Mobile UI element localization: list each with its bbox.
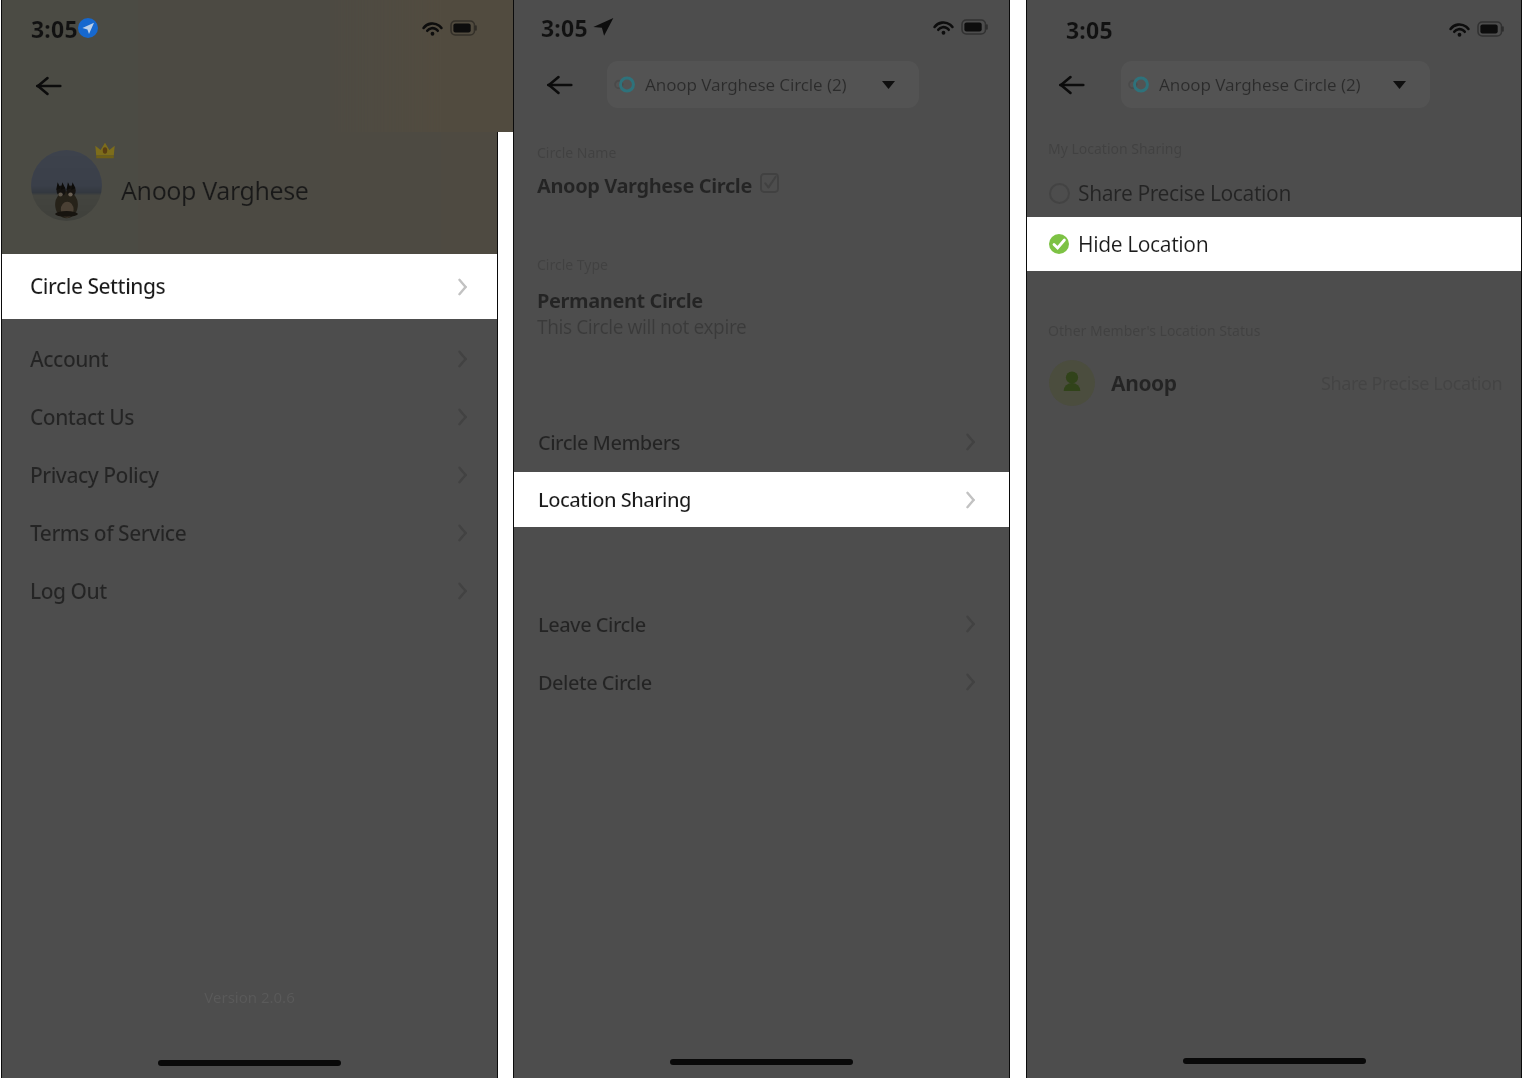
staticText: Circle Type — [537, 255, 608, 274]
staticText: Circle Members — [538, 429, 680, 456]
staticText: Anoop — [1111, 369, 1177, 398]
button[interactable]: Circle Members — [514, 414, 1009, 470]
staticText: Delete Circle — [538, 669, 652, 696]
button[interactable]: Hide Location — [1027, 217, 1521, 271]
staticText: Share Precise Location — [1078, 179, 1291, 208]
button[interactable]: Anoop Varghese Circle (2) — [1121, 61, 1430, 108]
button[interactable]: Account — [2, 330, 497, 388]
staticText: Permanent Circle — [537, 287, 703, 314]
button[interactable]: Leave Circle — [514, 596, 1009, 652]
staticText: Anoop Varghese Circle (2) — [645, 73, 847, 96]
staticText: Terms of Service — [30, 519, 187, 548]
staticText: This Circle will not expire — [537, 314, 747, 340]
staticText: Anoop Varghese — [121, 173, 309, 207]
staticText: 3:05 — [31, 13, 78, 44]
staticText: My Location Sharing — [1048, 139, 1183, 158]
staticText: Log Out — [30, 577, 107, 606]
button[interactable]: Privacy Policy — [2, 446, 497, 504]
staticText: Account — [30, 345, 109, 374]
button[interactable]: Back — [1048, 62, 1094, 108]
staticText: Other Member's Location Status — [1048, 321, 1261, 340]
staticText: Location Sharing — [538, 486, 691, 513]
staticText: Leave Circle — [538, 611, 646, 638]
staticText: Anoop Varghese Circle — [537, 172, 752, 199]
button[interactable]: Terms of Service — [2, 504, 497, 562]
staticText: Privacy Policy — [30, 461, 159, 490]
button[interactable]: Edit circle name — [754, 168, 784, 198]
button[interactable]: Location Sharing — [514, 472, 1009, 527]
staticText: Circle Name — [537, 143, 617, 162]
button[interactable]: Delete Circle — [514, 654, 1009, 710]
staticText: Contact Us — [30, 403, 134, 432]
button[interactable]: Back — [25, 63, 71, 109]
button[interactable]: Contact Us — [2, 388, 497, 446]
staticText: 3:05 — [1066, 14, 1113, 45]
staticText: Anoop Varghese Circle (2) — [1159, 73, 1361, 96]
staticText: Circle Settings — [30, 272, 166, 301]
button[interactable]: Share Precise Location — [1027, 170, 1521, 217]
button[interactable]: Log Out — [2, 562, 497, 620]
button[interactable]: Circle Settings — [2, 254, 497, 319]
staticText: 3:05 — [541, 12, 588, 43]
button[interactable]: Back — [536, 62, 582, 108]
staticText: Hide Location — [1078, 230, 1209, 259]
button[interactable]: Anoop Varghese Circle (2) — [607, 61, 919, 108]
